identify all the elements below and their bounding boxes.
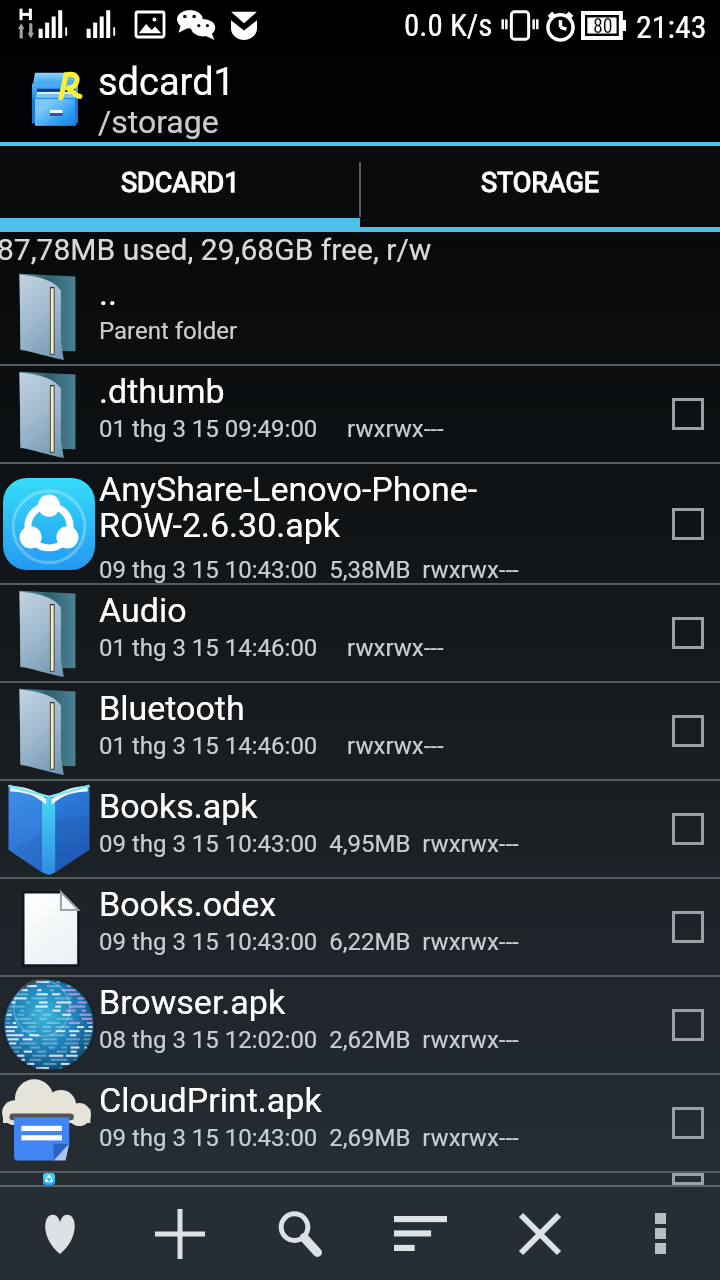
staticText: Parent folder xyxy=(99,317,238,345)
staticText: 09 thg 3 15 10:43:00 5,38MB rwxrwx--- xyxy=(99,556,519,584)
button[interactable]: STORAGE xyxy=(360,146,720,232)
button[interactable]: New xyxy=(120,1187,240,1280)
button[interactable]: Sort xyxy=(360,1187,480,1280)
staticText: 80 xyxy=(593,14,613,37)
staticText: .. xyxy=(99,273,669,313)
staticText: 09 thg 3 15 10:43:00 1,08MB rwxrwx--- xyxy=(99,1222,519,1234)
button[interactable]: .dthumb xyxy=(0,366,720,462)
button[interactable]: CloudPrint.apk xyxy=(0,1075,720,1171)
button[interactable]: AnyShare-Lenovo-Phone-ROW-2.6.30.apk xyxy=(0,464,720,583)
button[interactable]: More options xyxy=(600,1187,720,1280)
button[interactable]: Search xyxy=(240,1187,360,1280)
button[interactable]: Books.apk xyxy=(0,781,720,877)
staticText: /storage xyxy=(98,103,219,141)
staticText: CloudPrint.odex xyxy=(99,1178,669,1190)
staticText: SDCARD1 xyxy=(121,167,240,199)
staticText: 09 thg 3 15 10:43:00 4,95MB rwxrwx--- xyxy=(99,830,519,858)
button[interactable]: Favorites xyxy=(0,1187,120,1280)
staticText: 09 thg 3 15 10:43:00 6,22MB rwxrwx--- xyxy=(99,928,519,956)
staticText: STORAGE xyxy=(481,167,600,199)
staticText: AnyShare-Lenovo-Phone-ROW-2.6.30.apk xyxy=(99,469,669,545)
button[interactable]: Bluetooth xyxy=(0,683,720,779)
staticText: 01 thg 3 15 14:46:00 rwxrwx--- xyxy=(99,634,444,662)
button[interactable]: .. xyxy=(0,268,720,364)
staticText: 87,78MB used, 29,68GB free, r/w xyxy=(0,232,432,267)
button[interactable]: SDCARD1 xyxy=(0,146,360,232)
button[interactable]: Browser.apk xyxy=(0,977,720,1073)
staticText: 0.0 K/s xyxy=(404,7,493,43)
staticText: Bluetooth xyxy=(99,688,669,728)
staticText: 01 thg 3 15 09:49:00 rwxrwx--- xyxy=(99,415,444,443)
button[interactable]: CloudPrint.odex xyxy=(0,1173,720,1185)
staticText: 09 thg 3 15 10:43:00 2,69MB rwxrwx--- xyxy=(99,1124,519,1152)
staticText: .dthumb xyxy=(99,371,669,411)
staticText: Books.odex xyxy=(99,884,669,924)
button[interactable]: Audio xyxy=(0,585,720,681)
staticText: 01 thg 3 15 14:46:00 rwxrwx--- xyxy=(99,732,444,760)
staticText: 08 thg 3 15 12:02:00 2,62MB rwxrwx--- xyxy=(99,1026,519,1054)
button[interactable]: Books.odex xyxy=(0,879,720,975)
staticText: 21:43 xyxy=(636,8,707,46)
button[interactable]: sdcard1 xyxy=(0,56,720,146)
staticText: Audio xyxy=(99,590,669,630)
staticText: CloudPrint.apk xyxy=(99,1080,669,1120)
button[interactable]: Close xyxy=(480,1187,600,1280)
staticText: Browser.apk xyxy=(99,982,669,1022)
staticText: sdcard1 xyxy=(98,60,235,105)
staticText: Books.apk xyxy=(99,786,669,826)
